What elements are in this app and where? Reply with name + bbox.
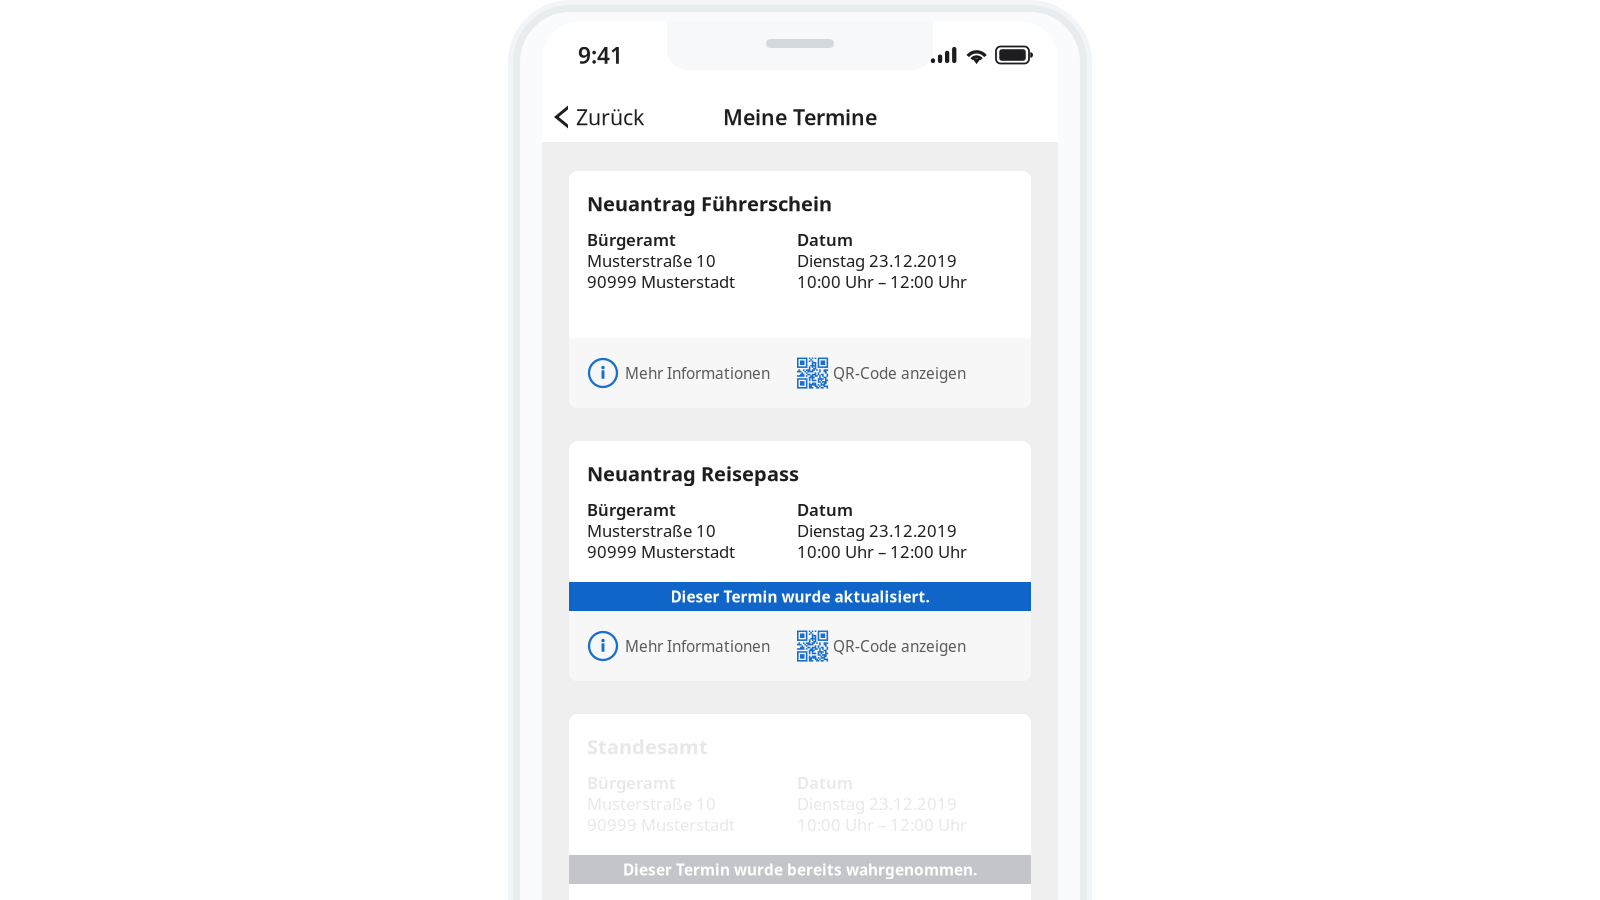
staticText: 10:00 Uhr – 12:00 Uhr bbox=[797, 270, 967, 293]
staticText: 90999 Musterstadt bbox=[587, 270, 735, 293]
staticText: Mehr Informationen bbox=[625, 363, 770, 383]
staticText: Bürgeramt bbox=[587, 771, 676, 794]
button[interactable]: QR-Code anzeigen bbox=[797, 346, 966, 400]
staticText: Zurück bbox=[576, 102, 644, 132]
staticText: Dienstag 23.12.2019 bbox=[797, 249, 957, 272]
staticText: Datum bbox=[797, 498, 853, 521]
staticText: Datum bbox=[797, 771, 853, 794]
staticText: Standesamt bbox=[587, 733, 708, 760]
staticText: Dienstag 23.12.2019 bbox=[797, 792, 957, 815]
staticText: Neuantrag Reisepass bbox=[587, 460, 799, 487]
button[interactable]: QR-Code anzeigen bbox=[797, 619, 966, 673]
staticText: 90999 Musterstadt bbox=[587, 540, 735, 563]
staticText: 10:00 Uhr – 12:00 Uhr bbox=[797, 540, 967, 563]
staticText: Bürgeramt bbox=[587, 228, 676, 251]
staticText: Musterstraße 10 bbox=[587, 249, 716, 272]
staticText: Bürgeramt bbox=[587, 498, 676, 521]
staticText: Mehr Informationen bbox=[625, 636, 770, 656]
staticText: 10:00 Uhr – 12:00 Uhr bbox=[797, 813, 967, 836]
staticText: 9:41 bbox=[578, 40, 623, 70]
button[interactable]: Mehr Informationen bbox=[589, 619, 770, 673]
staticText: Musterstraße 10 bbox=[587, 519, 716, 542]
staticText: Neuantrag Führerschein bbox=[587, 190, 832, 217]
staticText: QR-Code anzeigen bbox=[833, 636, 966, 656]
button[interactable]: Zurück bbox=[542, 93, 658, 141]
staticText: Dienstag 23.12.2019 bbox=[797, 519, 957, 542]
staticText: Dieser Termin wurde aktualisiert. bbox=[670, 586, 929, 607]
staticText: Datum bbox=[797, 228, 853, 251]
staticText: 90999 Musterstadt bbox=[587, 813, 735, 836]
staticText: Musterstraße 10 bbox=[587, 792, 716, 815]
button[interactable]: Mehr Informationen bbox=[589, 346, 770, 400]
staticText: Meine Termine bbox=[723, 102, 877, 132]
staticText: QR-Code anzeigen bbox=[833, 363, 966, 383]
staticText: Dieser Termin wurde bereits wahrgenommen… bbox=[623, 859, 977, 880]
